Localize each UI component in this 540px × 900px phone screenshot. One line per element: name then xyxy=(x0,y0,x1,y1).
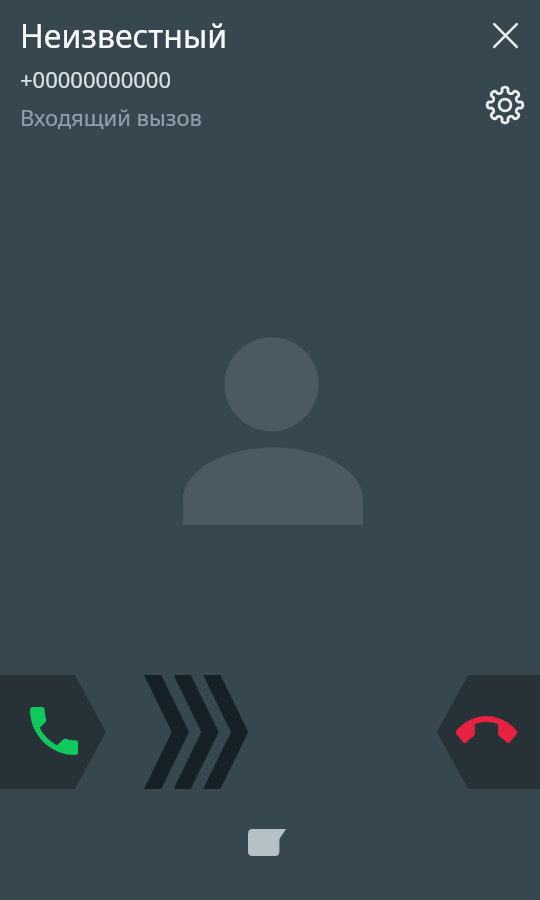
button[interactable]: Decline call xyxy=(437,675,540,789)
button[interactable]: Close xyxy=(479,9,531,61)
button[interactable]: Send message xyxy=(234,816,300,870)
staticText: +00000000000 xyxy=(20,64,172,94)
button[interactable]: Answer call xyxy=(0,675,106,789)
button[interactable]: Settings xyxy=(479,79,531,131)
staticText: Неизвестный xyxy=(20,14,228,58)
staticText: Входящий вызов xyxy=(20,102,202,132)
